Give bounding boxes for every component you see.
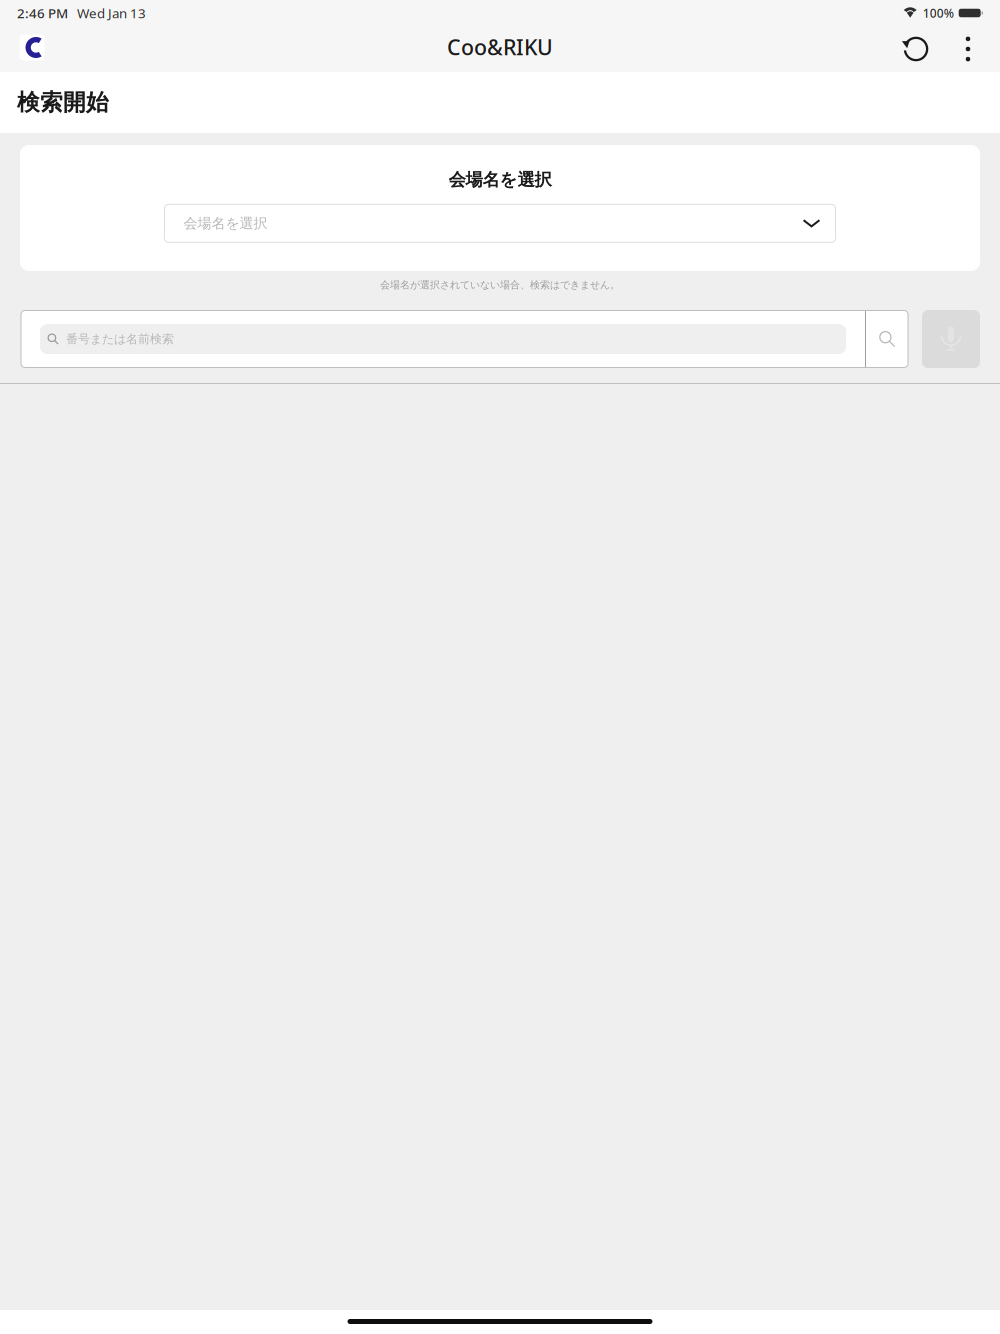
staticText: Wed Jan 13 xyxy=(77,4,146,22)
staticText: 番号または名前検索 xyxy=(66,332,174,346)
button[interactable]: Home xyxy=(10,26,54,72)
staticText: 会場名を選択 xyxy=(183,214,267,232)
staticText: Coo&RIKU xyxy=(447,33,553,61)
button[interactable]: Reload xyxy=(886,26,946,72)
button[interactable]: 会場名を選択 xyxy=(164,204,835,242)
staticText: 会場名を選択 xyxy=(448,169,551,190)
staticText: 2:46 PM xyxy=(17,4,68,22)
staticText: 検索開始 xyxy=(17,89,109,116)
staticText: 100% xyxy=(923,5,954,21)
button[interactable]: Search xyxy=(866,310,908,367)
staticText: 会場名が選択されていない場合、検索はできません。 xyxy=(380,279,620,291)
button[interactable]: More options xyxy=(946,26,990,72)
